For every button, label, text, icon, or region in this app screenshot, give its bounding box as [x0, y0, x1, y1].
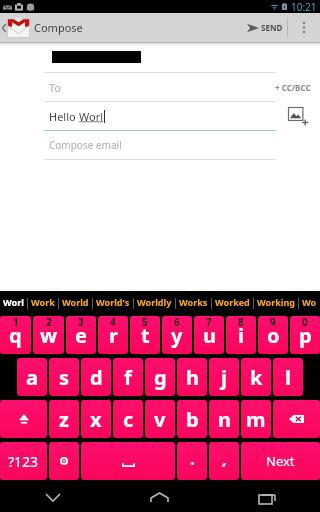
button[interactable]: b: [177, 400, 207, 438]
button[interactable]: ?123: [0, 442, 47, 480]
staticText: x: [90, 406, 102, 433]
staticText: g: [154, 364, 167, 391]
staticText: e: [75, 322, 87, 349]
button[interactable]: Space: [81, 442, 175, 480]
button[interactable]: m: [241, 400, 271, 438]
staticText: i: [238, 322, 244, 349]
button[interactable]: 3: [66, 316, 96, 354]
staticText: s: [59, 364, 70, 391]
button[interactable]: d: [81, 358, 111, 396]
staticText: Compose: [34, 20, 83, 35]
button[interactable]: 5: [130, 316, 160, 354]
button[interactable]: .: [177, 442, 207, 480]
staticText: 7: [206, 316, 212, 329]
staticText: 9: [270, 316, 276, 329]
staticText: To: [49, 80, 62, 95]
button[interactable]: Home: [106, 483, 213, 512]
button[interactable]: Works: [176, 297, 211, 309]
staticText: 10:21: [291, 0, 317, 13]
staticText: w: [40, 322, 58, 349]
staticText: f: [124, 364, 132, 391]
staticText: 0: [302, 316, 308, 329]
staticText: l: [285, 364, 291, 391]
staticText: b: [186, 406, 199, 433]
button[interactable]: Hide keyboard: [0, 483, 106, 512]
button[interactable]: SEND: [238, 13, 287, 42]
staticText: u: [203, 322, 216, 349]
button[interactable]: Worked: [299, 297, 320, 309]
button[interactable]: Next: [241, 442, 320, 480]
button[interactable]: 7: [194, 316, 224, 354]
button[interactable]: World's: [93, 297, 133, 309]
button[interactable]: Settings: [49, 442, 79, 480]
button[interactable]: Shift: [0, 400, 47, 438]
staticText: a: [26, 364, 38, 391]
button[interactable]: c: [113, 400, 143, 438]
button[interactable]: Worldly: [134, 297, 175, 309]
button[interactable]: Backspace: [273, 400, 320, 438]
button[interactable]: 1: [0, 316, 31, 354]
staticText: + CC/BCC: [275, 82, 311, 93]
button[interactable]: Insert image: [288, 107, 308, 125]
button[interactable]: g: [145, 358, 175, 396]
button[interactable]: n: [209, 400, 239, 438]
button[interactable]: Work: [28, 297, 58, 309]
button[interactable]: v: [145, 400, 175, 438]
button[interactable]: Hello: [0, 102, 320, 130]
staticText: ,: [222, 448, 227, 470]
button[interactable]: 4: [98, 316, 128, 354]
button[interactable]: More options: [288, 13, 320, 42]
button[interactable]: 8: [226, 316, 256, 354]
button[interactable]: s: [49, 358, 79, 396]
button[interactable]: a: [17, 358, 47, 396]
staticText: m: [246, 406, 266, 433]
staticText: p: [299, 322, 312, 349]
staticText: o: [267, 322, 280, 349]
button[interactable]: 0: [290, 316, 320, 354]
staticText: c: [123, 406, 134, 433]
staticText: 1: [13, 316, 19, 329]
staticText: n: [218, 406, 231, 433]
staticText: 6: [174, 316, 180, 329]
staticText: .: [190, 448, 195, 470]
button[interactable]: 2: [33, 316, 64, 354]
button[interactable]: Recent apps: [213, 483, 320, 512]
staticText: 3: [78, 316, 84, 329]
staticText: Compose email: [49, 138, 122, 152]
staticText: y: [171, 322, 183, 349]
button[interactable]: Worked: [212, 297, 253, 309]
button[interactable]: f: [113, 358, 143, 396]
staticText: j: [221, 364, 227, 391]
staticText: t: [141, 322, 150, 349]
button[interactable]: x: [81, 400, 111, 438]
button[interactable]: Compose: [0, 13, 91, 42]
staticText: 2: [46, 316, 52, 329]
staticText: h: [186, 364, 199, 391]
button[interactable]: z: [49, 400, 79, 438]
button[interactable]: 6: [162, 316, 192, 354]
button[interactable]: j: [209, 358, 239, 396]
button[interactable]: World: [59, 297, 92, 309]
button[interactable]: ,: [209, 442, 239, 480]
staticText: Hello: [49, 109, 79, 124]
staticText: 4: [110, 316, 116, 329]
button[interactable]: [0, 46, 320, 72]
staticText: k: [250, 364, 263, 391]
staticText: Worl: [79, 109, 104, 124]
staticText: 8: [238, 316, 244, 329]
button[interactable]: h: [177, 358, 207, 396]
button[interactable]: Working: [254, 297, 298, 309]
button[interactable]: Worl: [0, 297, 27, 309]
button[interactable]: Compose email: [0, 131, 320, 159]
staticText: d: [90, 364, 103, 391]
button[interactable]: To: [0, 73, 320, 101]
button[interactable]: l: [273, 358, 303, 396]
staticText: r: [109, 322, 118, 349]
staticText: z: [59, 406, 69, 433]
button[interactable]: k: [241, 358, 271, 396]
staticText: q: [9, 322, 22, 349]
staticText: Next: [266, 452, 295, 470]
staticText: v: [154, 406, 166, 433]
staticText: ?123: [8, 452, 39, 471]
button[interactable]: 9: [258, 316, 288, 354]
